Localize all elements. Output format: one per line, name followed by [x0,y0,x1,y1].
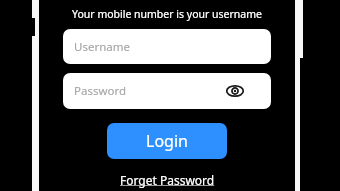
button[interactable]: Forget Password [114,170,221,190]
button[interactable]: Username [63,29,271,64]
staticText: Username [74,39,130,55]
button[interactable]: Show password [222,78,248,104]
button[interactable]: Login [107,123,227,159]
staticText: Your mobile number is your username [39,7,295,21]
staticText: Login [146,130,188,152]
button[interactable]: Password [63,73,271,109]
staticText: Password [74,83,127,99]
staticText: Forget Password [120,172,215,188]
